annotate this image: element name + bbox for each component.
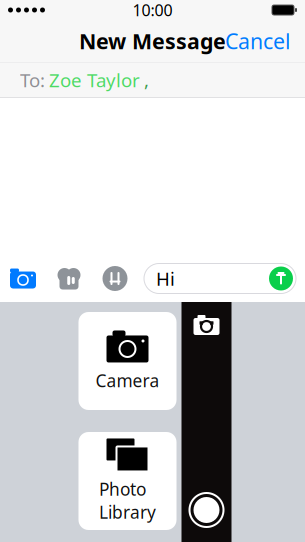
button[interactable]: Take Photo: [184, 488, 228, 532]
staticText: Cancel: [225, 27, 291, 55]
button[interactable]: Digital Touch: [46, 256, 92, 300]
button[interactable]: Camera: [78, 312, 176, 410]
staticText: ,: [144, 68, 149, 92]
staticText: New Message: [79, 27, 226, 55]
staticText: To:: [20, 68, 45, 92]
button[interactable]: Send: [266, 263, 296, 293]
button[interactable]: App Store: [92, 256, 138, 300]
button[interactable]: Cancel: [215, 19, 301, 63]
staticText: Photo Library: [99, 477, 156, 523]
button[interactable]: Photo Library: [78, 432, 176, 530]
button[interactable]: Flip Camera: [189, 310, 223, 340]
staticText: Zoe Taylor: [49, 68, 140, 92]
button[interactable]: To:: [0, 62, 305, 97]
button[interactable]: Camera: [0, 256, 46, 300]
staticText: 10:00: [132, 0, 172, 21]
staticText: Hi: [156, 266, 175, 291]
staticText: Camera: [95, 369, 159, 392]
